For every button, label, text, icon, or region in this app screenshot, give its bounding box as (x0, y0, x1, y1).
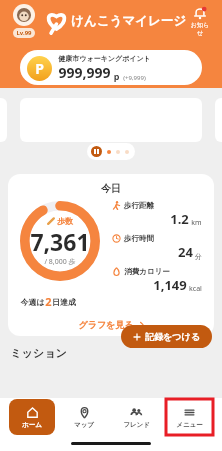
staticText: P (35, 59, 44, 78)
button[interactable]: 記録をつける (121, 325, 212, 348)
staticText: 記録をつける (145, 331, 200, 342)
staticText: フレンド (123, 421, 150, 429)
button[interactable]: フレンド (113, 399, 160, 435)
staticText: お知らせ (188, 21, 212, 37)
staticText: kcal (189, 284, 202, 294)
staticText: 健康市ウォーキングポイント (58, 54, 151, 63)
staticText: Lv.99 (16, 29, 32, 37)
staticText: けんこうマイレージ (71, 13, 186, 29)
staticText: マップ (74, 421, 94, 429)
staticText: p (111, 70, 120, 82)
staticText: (+9,999) (123, 74, 146, 82)
staticText: / 8,000 歩 (44, 257, 76, 267)
button[interactable]: メニュー (166, 399, 213, 435)
staticText: 7,361 (30, 226, 90, 257)
staticText: 消費カロリー (124, 267, 170, 276)
button[interactable]: プロフィール (8, 4, 40, 38)
button[interactable]: ホーム (9, 399, 55, 435)
button[interactable]: P (20, 50, 202, 85)
staticText: 歩数 (57, 216, 73, 226)
button[interactable]: お知らせ (186, 6, 214, 37)
staticText: 1.2 (170, 210, 189, 228)
staticText: ミッション (10, 346, 67, 360)
button[interactable]: 一時停止 (87, 143, 135, 160)
button[interactable] (0, 98, 7, 142)
staticText: 1,149 (153, 276, 187, 294)
staticText: ホーム (22, 421, 42, 429)
staticText: 歩行時間 (124, 234, 154, 243)
staticText: 日達成 (52, 297, 76, 307)
button[interactable]: マップ (61, 399, 107, 435)
staticText: 分 (195, 252, 202, 261)
button[interactable]: グラフを見る (70, 317, 153, 332)
staticText: 999,999 (58, 63, 111, 82)
staticText: 2 (45, 294, 52, 309)
staticText: 今日 (101, 182, 121, 195)
staticText: 歩行距離 (124, 201, 154, 210)
staticText: メニュー (176, 421, 203, 429)
staticText: グラフを見る (78, 319, 134, 330)
button[interactable] (215, 98, 222, 142)
staticText: km (191, 218, 202, 228)
staticText: 今週は (20, 297, 45, 307)
staticText: 24 (178, 243, 193, 261)
